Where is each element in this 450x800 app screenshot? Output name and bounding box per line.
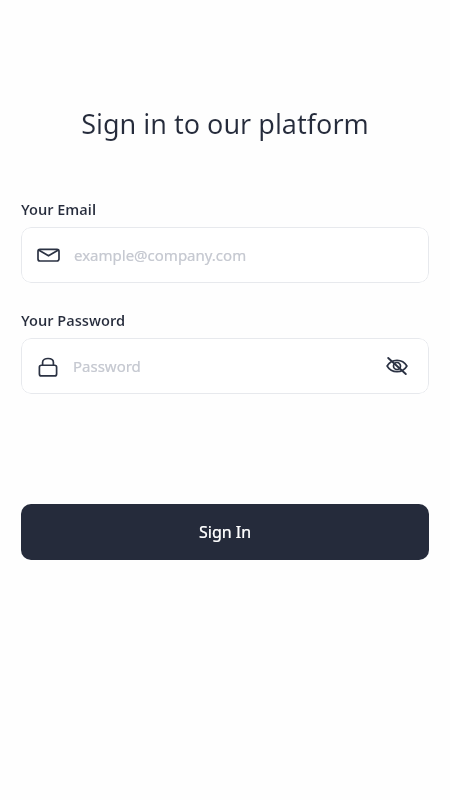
- staticText: Sign in to our platform: [0, 105, 450, 142]
- staticText: Sign In: [199, 521, 252, 543]
- button[interactable]: Show password: [382, 351, 412, 381]
- staticText: example@company.com: [74, 245, 412, 265]
- staticText: Password: [73, 356, 382, 376]
- staticText: Your Password: [21, 310, 126, 330]
- staticText: Your Email: [21, 199, 96, 219]
- button[interactable]: example@company.com: [21, 227, 429, 283]
- button[interactable]: Sign In: [21, 504, 429, 560]
- button[interactable]: Password: [21, 338, 429, 394]
